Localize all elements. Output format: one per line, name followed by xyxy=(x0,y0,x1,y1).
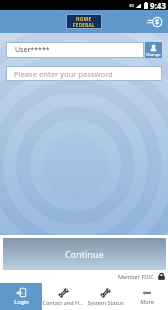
staticText: FEDERAL xyxy=(73,22,95,28)
staticText: HOME xyxy=(76,16,92,22)
staticText: Login xyxy=(14,298,29,305)
staticText: $ xyxy=(155,17,160,27)
button[interactable]: Continue xyxy=(3,238,166,270)
staticText: Member FDIC xyxy=(118,273,154,280)
staticText: Continue xyxy=(65,248,104,260)
button[interactable]: Login xyxy=(0,283,42,310)
staticText: System Status xyxy=(87,299,124,306)
button[interactable]: Contact and H... xyxy=(42,283,84,310)
button[interactable]: Rates xyxy=(145,12,165,32)
staticText: Change xyxy=(146,52,161,57)
staticText: More xyxy=(140,298,154,305)
button[interactable]: Change xyxy=(145,42,162,58)
button[interactable]: System Status xyxy=(84,283,126,310)
button[interactable]: More xyxy=(126,283,168,310)
staticText: Please enter your password xyxy=(14,69,113,79)
staticText: Contact and H... xyxy=(42,299,84,306)
button[interactable]: User***** xyxy=(7,43,143,57)
staticText: 9:43 xyxy=(150,0,166,10)
button[interactable]: Please enter your password xyxy=(7,67,161,80)
staticText: User***** xyxy=(15,45,50,55)
staticText: 3G xyxy=(129,3,135,8)
